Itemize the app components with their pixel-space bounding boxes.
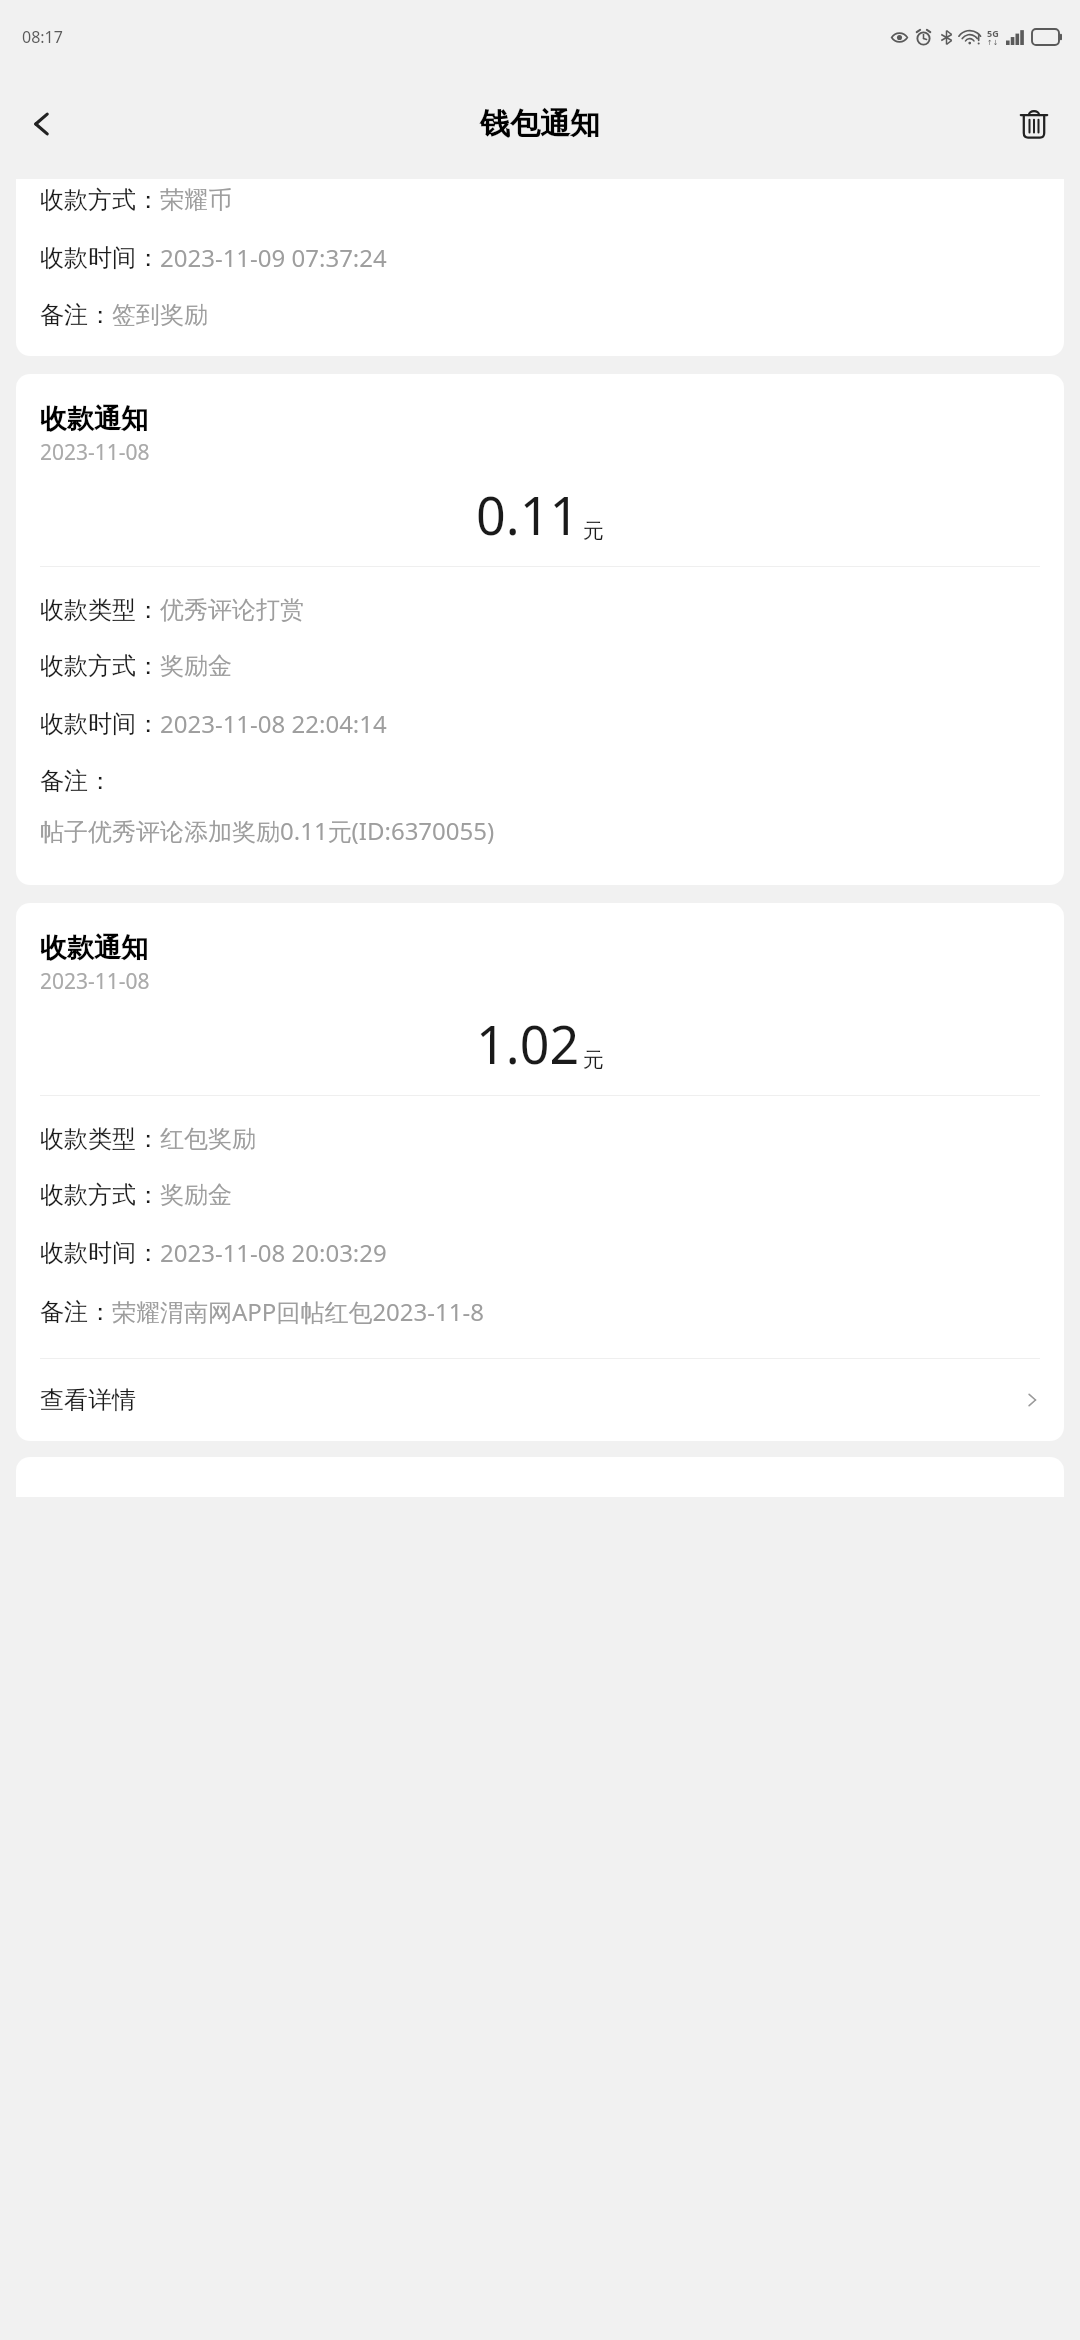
staticText: 奖励金 <box>160 651 232 681</box>
staticText: 备注： <box>40 1297 112 1327</box>
staticText: 红包奖励 <box>160 1124 256 1154</box>
staticText: 2023-11-08 <box>40 438 150 467</box>
staticText: 元 <box>583 518 604 544</box>
button[interactable]: Delete <box>1002 92 1066 156</box>
staticText: 荣耀币 <box>160 185 232 215</box>
staticText: 收款通知 <box>40 402 148 436</box>
staticText: 收款时间： <box>40 243 160 273</box>
staticText: ↑↓ <box>987 39 999 47</box>
staticText: 钱包通知 <box>480 105 600 143</box>
button[interactable]: 收款通知 <box>16 374 1064 885</box>
staticText: 奖励金 <box>160 1180 232 1210</box>
staticText: 2023-11-08 <box>40 967 150 996</box>
staticText: 2023-11-09 07:37:24 <box>160 241 387 274</box>
staticText: 查看详情 <box>40 1385 136 1415</box>
button[interactable]: 收款方式： <box>16 179 1064 356</box>
staticText: 备注： <box>40 766 112 796</box>
staticText: 收款时间： <box>40 1238 160 1268</box>
button[interactable]: 收款通知 <box>16 903 1064 1441</box>
staticText: 2023-11-08 20:03:29 <box>160 1236 387 1269</box>
staticText: 收款类型： <box>40 595 160 625</box>
staticText: 优秀评论打赏 <box>160 595 304 625</box>
staticText: 0.11 <box>476 479 580 550</box>
staticText: 08:17 <box>22 26 63 48</box>
staticText: 收款通知 <box>40 931 148 965</box>
staticText: 备注： <box>40 300 112 330</box>
staticText: 元 <box>583 1047 604 1073</box>
staticText: 收款方式： <box>40 185 160 215</box>
staticText: 5G <box>987 27 999 39</box>
staticText: 帖子优秀评论添加奖励0.11元(ID:6370055) <box>40 814 495 847</box>
staticText: 2023-11-08 22:04:14 <box>160 707 387 740</box>
staticText: 收款方式： <box>40 1180 160 1210</box>
staticText: 1.02 <box>476 1008 580 1079</box>
staticText: 收款时间： <box>40 709 160 739</box>
staticText: 荣耀渭南网APP回帖红包2023-11-8 <box>112 1295 484 1328</box>
staticText: 收款类型： <box>40 1124 160 1154</box>
button[interactable]: Back <box>10 92 74 156</box>
staticText: 签到奖励 <box>112 300 208 330</box>
button[interactable]: 查看详情 <box>16 1359 1064 1441</box>
staticText: 收款方式： <box>40 651 160 681</box>
